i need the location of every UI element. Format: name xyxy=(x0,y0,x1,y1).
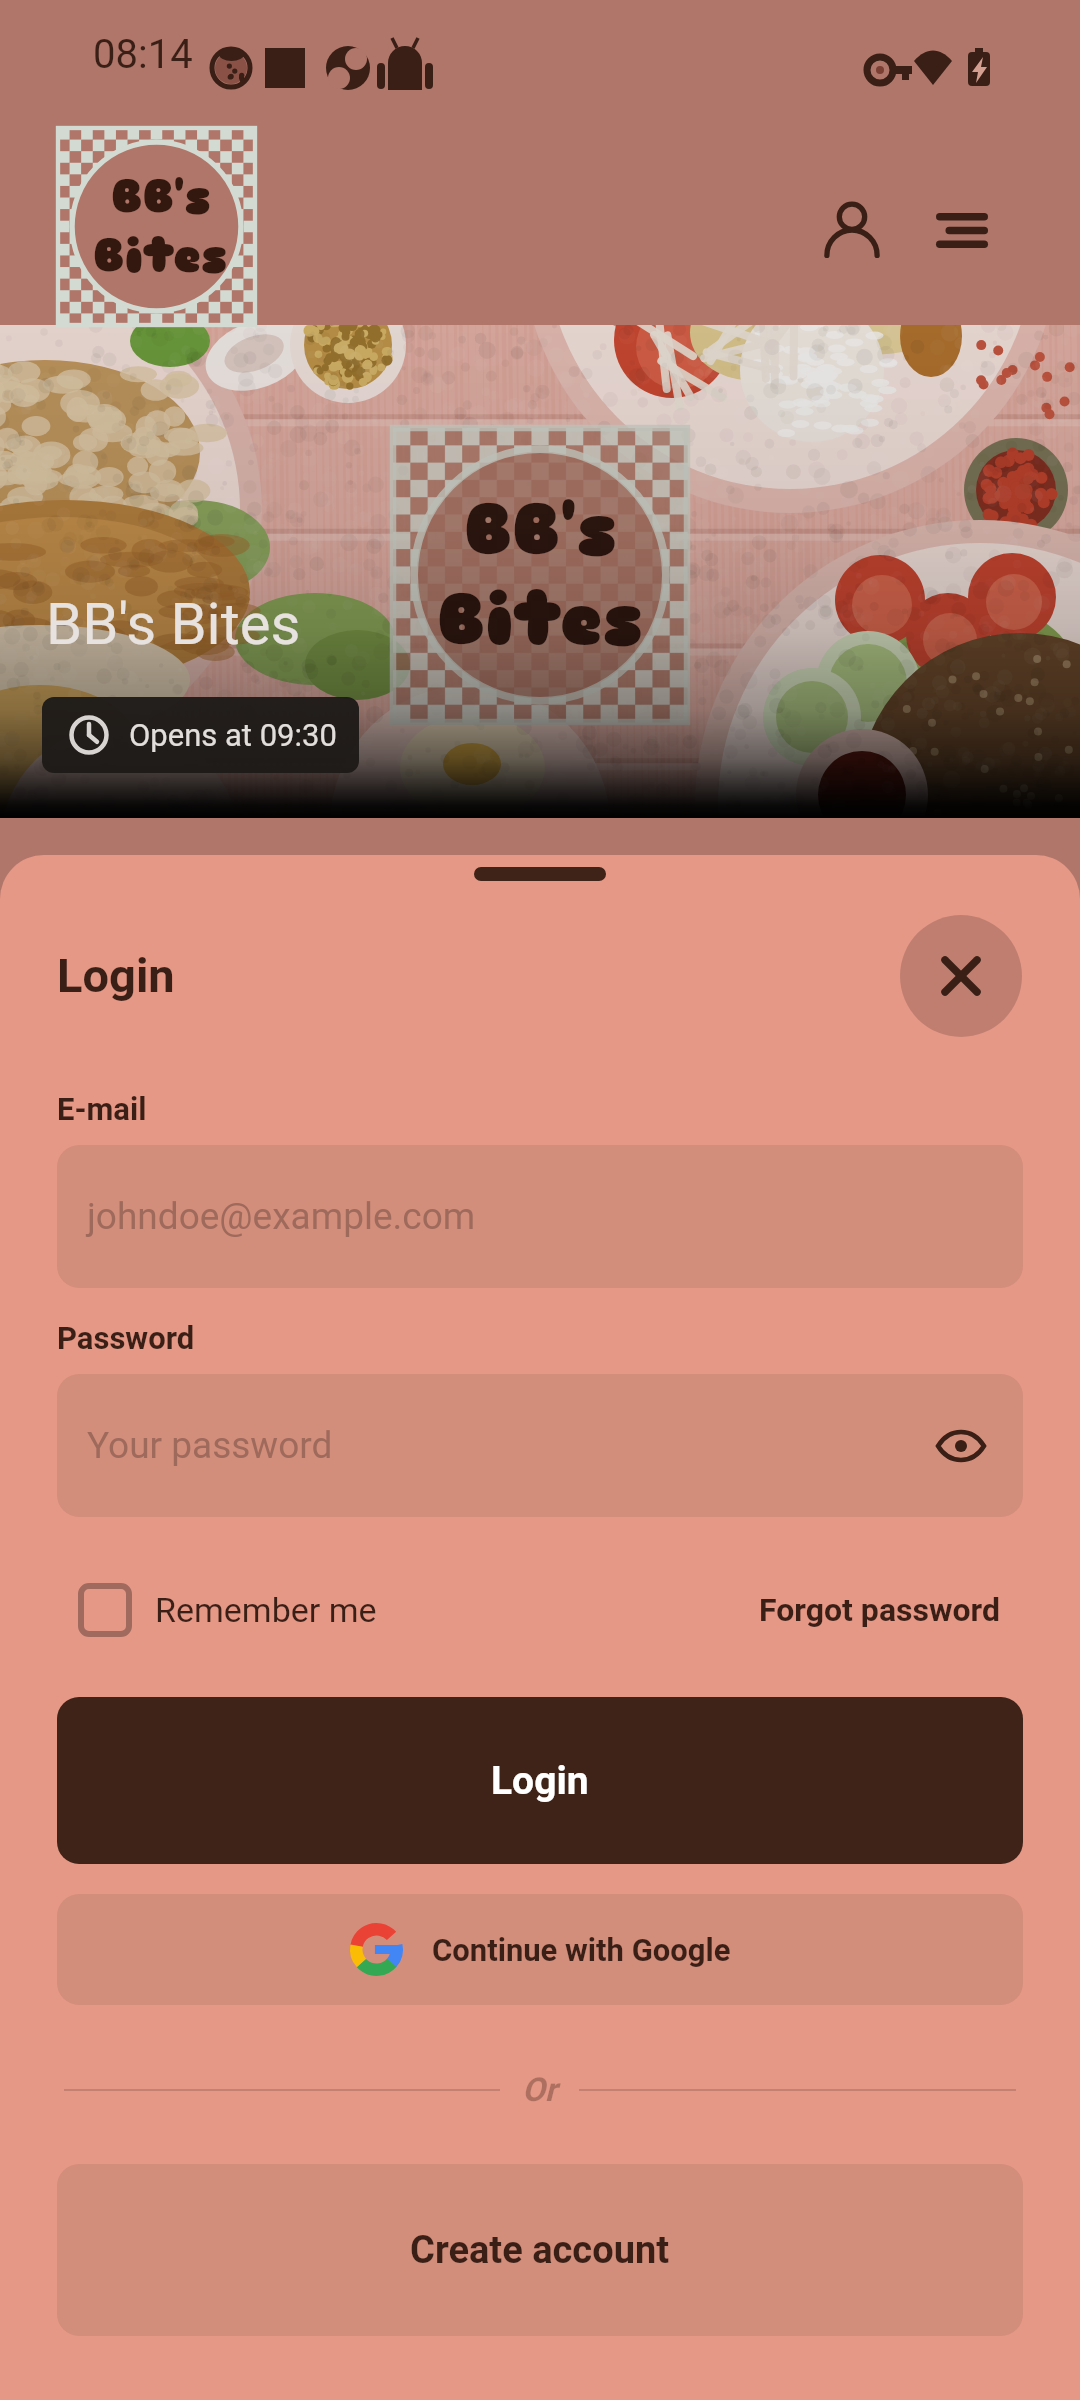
staticText: Bites xyxy=(93,227,228,286)
button[interactable]: BB's xyxy=(58,128,262,325)
button[interactable]: Account xyxy=(804,182,900,278)
staticText: johndoe@example.com xyxy=(87,1195,476,1238)
button[interactable]: Login xyxy=(57,1697,1023,1864)
button[interactable]: Remember me xyxy=(57,1586,377,1634)
button[interactable]: Create account xyxy=(57,2164,1023,2336)
button[interactable]: Forgot password xyxy=(759,1591,1023,1629)
staticText: Remember me xyxy=(155,1590,377,1630)
staticText: Password xyxy=(57,1320,195,1356)
button[interactable]: Close xyxy=(900,915,1022,1037)
staticText: Your password xyxy=(87,1424,333,1467)
staticText: BB's xyxy=(464,485,617,575)
staticText: Opens at 09:30 xyxy=(129,717,337,753)
staticText: Login xyxy=(57,948,175,1003)
button[interactable]: Show password xyxy=(925,1410,997,1482)
staticText: Login xyxy=(491,1758,589,1804)
staticText: E-mail xyxy=(57,1091,147,1127)
staticText: Continue with Google xyxy=(432,1932,731,1968)
button[interactable]: Opens at 09:30 xyxy=(42,697,359,773)
staticText: Or xyxy=(522,2070,557,2109)
staticText: BB's Bites xyxy=(46,590,301,658)
staticText: BB's xyxy=(111,168,211,227)
staticText: Create account xyxy=(410,2228,670,2273)
button[interactable]: johndoe@example.com xyxy=(57,1145,1023,1288)
button[interactable]: Continue with Google xyxy=(57,1894,1023,2005)
staticText: Bites xyxy=(437,575,643,665)
button[interactable]: Menu xyxy=(914,182,1010,278)
staticText: 08:14 xyxy=(93,31,193,78)
button[interactable]: Your password xyxy=(57,1374,1023,1517)
